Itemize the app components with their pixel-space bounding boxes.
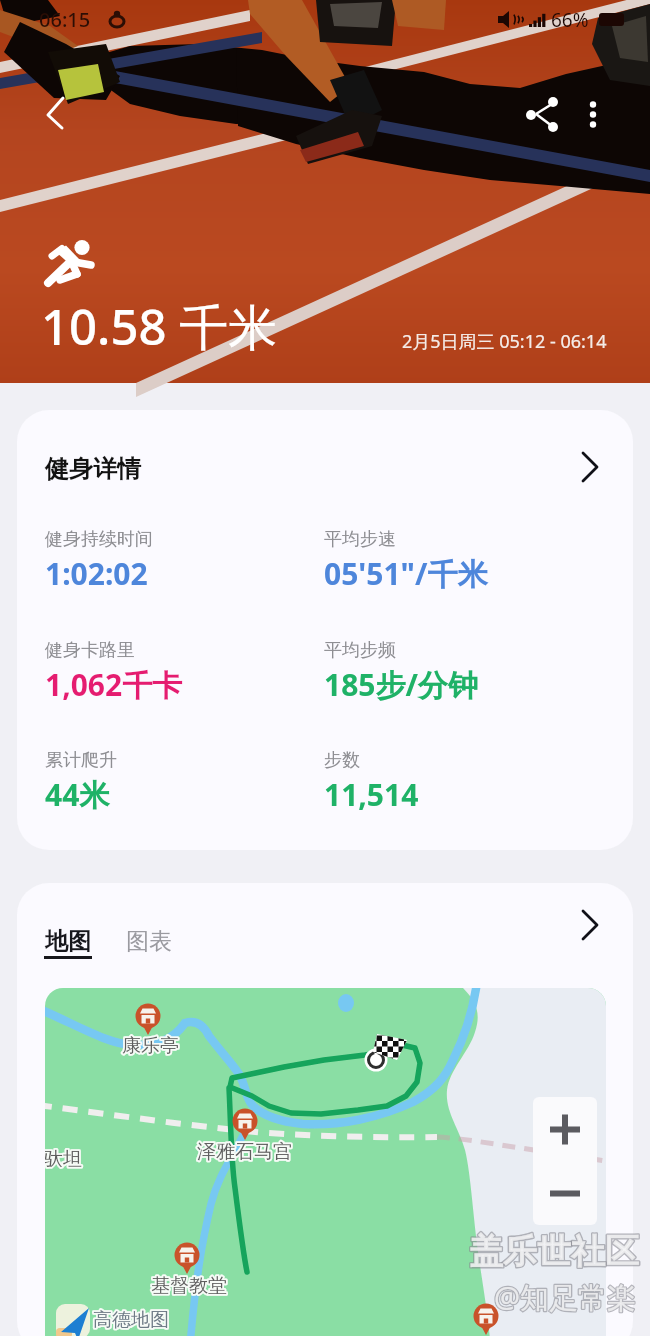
staticText: 地图 [45, 927, 91, 956]
button[interactable]: Zoom in [533, 1097, 597, 1161]
button[interactable]: More options [565, 86, 621, 142]
staticText: 44米 [45, 774, 110, 815]
staticText: 185步/分钟 [324, 664, 478, 705]
staticText: 1:02:02 [45, 553, 148, 594]
staticText: @知足常楽 [494, 1277, 637, 1317]
staticText: 康乐亭 [122, 1034, 179, 1058]
staticText: 健身持续时间 [45, 528, 153, 551]
staticText: 05'51"/千米 [324, 553, 488, 594]
staticText: 图表 [126, 927, 172, 956]
staticText: 康乐亭 [122, 1034, 179, 1058]
staticText: 高德地图 [93, 1308, 169, 1332]
staticText: @知足常楽 [494, 1277, 637, 1317]
staticText: 平均步速 [324, 528, 396, 551]
staticText: 1,062千卡 [45, 664, 183, 705]
button[interactable]: 地图 [38, 917, 96, 965]
staticText: 11,514 [324, 774, 419, 815]
button[interactable]: 平均步速 [324, 528, 594, 594]
staticText: 累计爬升 [45, 749, 117, 772]
staticText: 步数 [324, 749, 360, 772]
button[interactable]: Share [514, 86, 570, 142]
button[interactable]: 平均步频 [324, 639, 594, 705]
staticText: 基督教堂 [151, 1274, 227, 1298]
staticText: 健身卡路里 [45, 639, 135, 662]
button[interactable]: Open map [567, 897, 623, 953]
staticText: 高德地图 [93, 1308, 169, 1332]
button[interactable]: 步数 [324, 749, 594, 815]
button[interactable]: 图表 [119, 917, 177, 965]
staticText: 盖乐世社区 [469, 1230, 639, 1273]
staticText: 健身详情 [45, 454, 141, 484]
staticText: 10.58 千米 [41, 293, 278, 360]
staticText: 06:15 [39, 6, 91, 33]
button[interactable]: 累计爬升 [45, 749, 315, 815]
button[interactable]: 健身持续时间 [45, 528, 315, 594]
staticText: 盖乐世社区 [469, 1230, 639, 1273]
staticText: 2月5日周三 05:12 - 06:14 [402, 329, 607, 354]
button[interactable]: Back [28, 85, 84, 141]
button[interactable]: 健身详情 [17, 410, 633, 512]
staticText: 平均步频 [324, 639, 396, 662]
staticText: 泽雅石马宫 [197, 1140, 292, 1164]
staticText: 66% [551, 7, 589, 33]
button[interactable]: 康乐亭 [45, 988, 606, 1336]
staticText: 泽雅石马宫 [197, 1140, 292, 1164]
staticText: 基督教堂 [151, 1274, 227, 1298]
button[interactable]: 健身卡路里 [45, 639, 315, 705]
button[interactable]: Zoom out [533, 1161, 597, 1225]
staticText: 驮坦 [45, 1147, 82, 1171]
staticText: 驮坦 [45, 1147, 82, 1171]
